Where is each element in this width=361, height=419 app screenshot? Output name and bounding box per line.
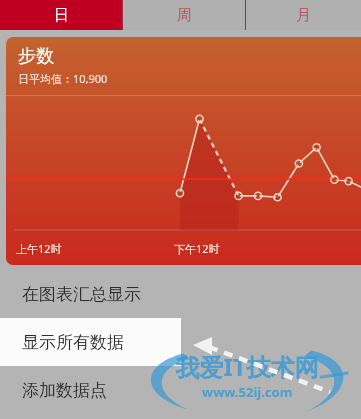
button[interactable]: 周 [123,0,245,30]
button[interactable]: 显示所有数据 [0,318,361,366]
button[interactable]: 月 [246,0,361,30]
other: Pointer arrow [0,0,361,419]
button[interactable]: 步数 [6,37,361,265]
button[interactable]: 添加数据点 [0,366,361,414]
staticText: 上午12时 [16,241,62,256]
staticText: 日平均值：10,900 [18,71,108,86]
staticText: 在图表汇总显示 [22,284,141,305]
staticText: 下午12时 [174,241,220,256]
button[interactable]: 在图表汇总显示 [0,270,361,318]
staticText: www.52ij.com [202,383,293,401]
staticText: 步数 [18,45,54,68]
staticText: 显示所有数据 [22,332,124,353]
staticText: 日 [54,6,69,25]
staticText: 月 [296,6,311,25]
staticText: 我爱IT技术网 [175,350,319,383]
button[interactable]: 日 [0,0,122,30]
staticText: 周 [177,6,192,25]
staticText: 添加数据点 [22,380,107,401]
